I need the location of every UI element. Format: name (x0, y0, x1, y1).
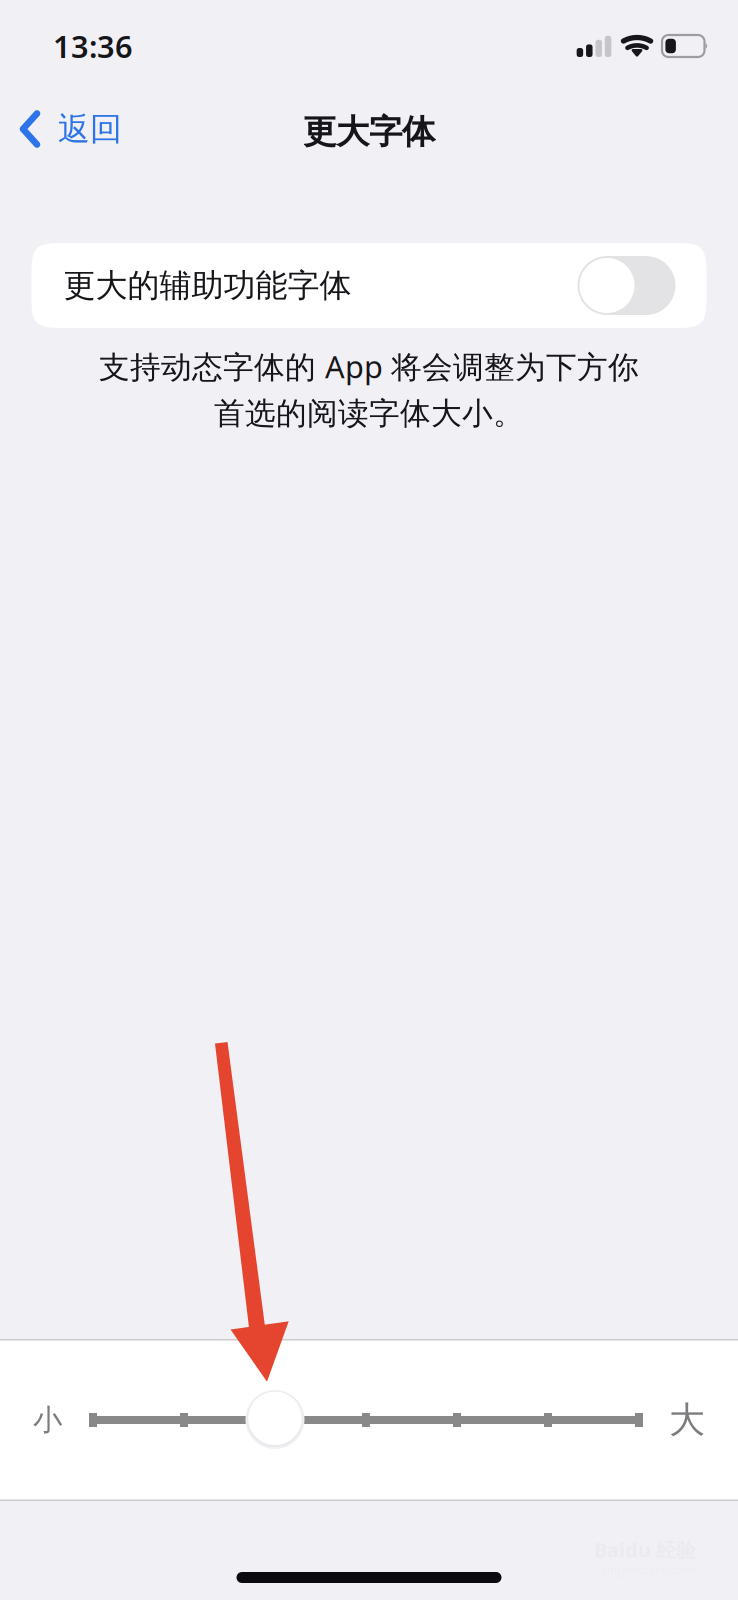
staticText: 支持动态字体的 App 将会调整为下方你 (99, 346, 639, 387)
staticText: 13:36 (53, 26, 133, 66)
staticText: 返回 (58, 109, 122, 149)
staticText: 首选的阅读字体大小。 (214, 395, 524, 432)
staticText: 更大字体 (303, 111, 435, 152)
staticText: 更大的辅助功能字体 (63, 266, 351, 305)
button[interactable]: 返回 (3, 98, 138, 160)
staticText: 大 (669, 1398, 705, 1442)
button[interactable]: 更大的辅助功能字体 (31, 243, 706, 328)
staticText: 小 (33, 1402, 62, 1438)
